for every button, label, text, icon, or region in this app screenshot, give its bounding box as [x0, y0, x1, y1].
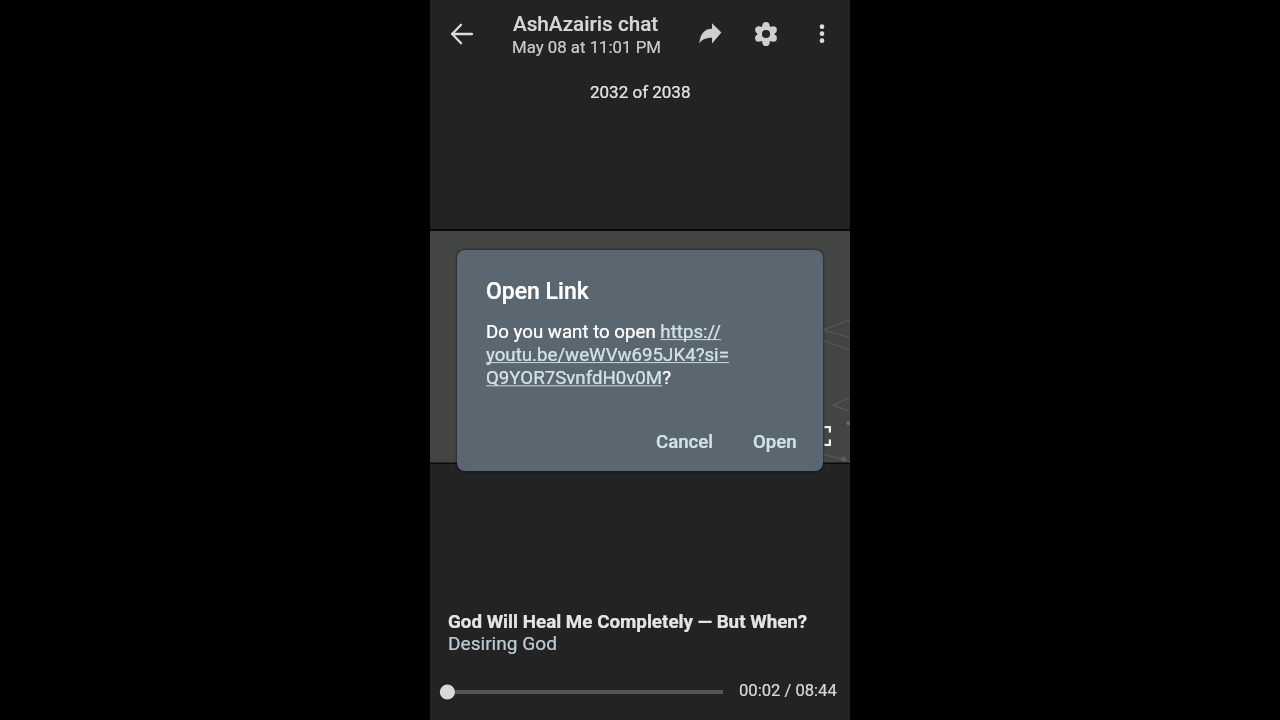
staticText: AshAzairis chat: [513, 12, 659, 36]
button[interactable]: Back: [438, 10, 486, 58]
button[interactable]: Fullscreen: [811, 426, 831, 446]
button[interactable]: Seek bar: [438, 680, 728, 704]
staticText: Cancel: [656, 431, 713, 453]
button[interactable]: Settings: [742, 10, 790, 58]
staticText: May 08 at 11:01 PM: [512, 37, 661, 57]
button[interactable]: Cancel: [644, 423, 725, 461]
button[interactable]: Open: [741, 423, 809, 461]
staticText: God Will Heal Me Completely — But When?: [448, 611, 808, 633]
button[interactable]: More options: [798, 10, 846, 58]
staticText: Do you want to open https:// youtu.be/we…: [486, 321, 729, 389]
staticText: Desiring God: [448, 632, 557, 654]
staticText: Open Link: [486, 278, 589, 305]
button[interactable]: Share: [686, 10, 734, 58]
staticText: 00:02 / 08:44: [739, 681, 837, 700]
staticText: Open: [753, 431, 797, 453]
staticText: 2032 of 2038: [590, 82, 691, 102]
